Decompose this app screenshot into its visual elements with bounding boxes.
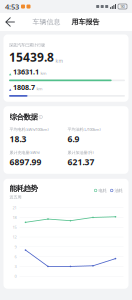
staticText: 12 [12, 234, 16, 240]
staticText: 6.9 [67, 133, 79, 145]
staticText: 90 [120, 4, 124, 9]
staticText: 用车报告 [71, 18, 99, 26]
staticText: 综合数据 [9, 112, 37, 122]
staticText: 4:53 [5, 1, 19, 12]
staticText: 1808.7 [13, 82, 35, 92]
staticText: km [37, 86, 43, 91]
staticText: 累计充电量(kWh) [9, 150, 39, 155]
staticText: 13631.1 [13, 67, 39, 76]
staticText: i [40, 115, 41, 119]
staticText: 18.3 [9, 133, 26, 145]
staticText: 3 [14, 264, 16, 269]
staticText: 6897.99 [9, 156, 41, 168]
staticText: 15439.8 [9, 49, 54, 65]
staticText: 深蓝汽车已累计行驶 [9, 42, 45, 48]
staticText: 能耗趋势 [9, 184, 37, 193]
staticText: 车辆信息 [32, 18, 60, 26]
staticText: 电耗 [98, 188, 106, 193]
staticText: 近五周 [9, 195, 21, 200]
button[interactable]: 车辆信息 [31, 16, 61, 28]
staticText: km [41, 70, 47, 76]
staticText: 累计加油量(升) [67, 150, 93, 155]
staticText: 621.37 [67, 156, 94, 168]
button[interactable]: 用车报告 [70, 16, 100, 28]
staticText: km [55, 58, 62, 64]
staticText: 0 [14, 273, 16, 279]
staticText: 15 [12, 224, 16, 230]
staticText: 21 [12, 205, 16, 210]
staticText: 平均油耗(L/100km) [67, 127, 100, 132]
staticText: 18 [12, 215, 16, 220]
button[interactable]: Back [3, 14, 19, 29]
staticText: 平均电耗(kWh/100km) [9, 127, 48, 132]
staticText: 油耗 [114, 188, 122, 193]
staticText: 9 [14, 244, 16, 249]
staticText: 6 [14, 254, 16, 259]
